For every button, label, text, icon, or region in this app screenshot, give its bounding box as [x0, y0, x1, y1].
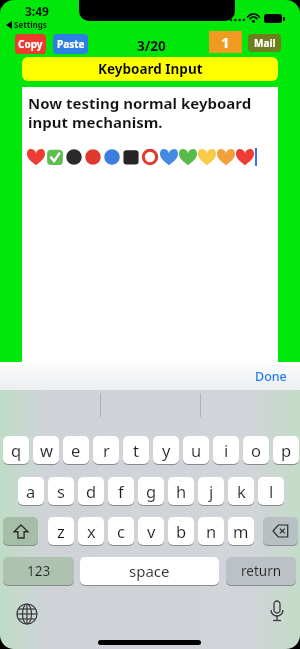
staticText: Keyboard Input [98, 60, 203, 78]
button[interactable]: z [48, 517, 74, 545]
button[interactable]: b [168, 517, 194, 545]
staticText: w [40, 439, 53, 461]
button[interactable]: e [63, 436, 89, 464]
button[interactable] [3, 517, 38, 545]
button[interactable]: 123 [3, 557, 74, 585]
button[interactable]: g [138, 477, 164, 505]
staticText: Settings [14, 19, 47, 30]
button[interactable]: t [123, 436, 149, 464]
staticText: u [191, 439, 202, 461]
staticText: m [233, 520, 249, 542]
button[interactable]: y [153, 436, 179, 464]
button[interactable]: v [138, 517, 164, 545]
staticText: b [176, 520, 187, 542]
button[interactable]: i [213, 436, 239, 464]
button[interactable]: 1 [209, 31, 242, 53]
button[interactable]: k [228, 477, 254, 505]
staticText: a [26, 480, 36, 502]
button[interactable]: q [3, 436, 29, 464]
staticText: y [162, 439, 171, 461]
button[interactable]: c [108, 517, 134, 545]
button[interactable]: m [228, 517, 254, 545]
staticText: e [71, 439, 81, 461]
button[interactable]: return [226, 557, 296, 585]
button[interactable]: Paste [53, 34, 88, 54]
staticText: j [209, 480, 214, 502]
staticText: 3/20 [137, 37, 166, 55]
button[interactable]: s [48, 477, 74, 505]
button[interactable] [269, 601, 285, 624]
staticText: Mail [254, 36, 276, 50]
button[interactable]: l [258, 477, 284, 505]
button[interactable]: p [273, 436, 299, 464]
staticText: r [103, 439, 110, 461]
button[interactable] [16, 603, 38, 625]
button[interactable]: w [33, 436, 59, 464]
button[interactable]: r [93, 436, 119, 464]
button[interactable]: Copy [15, 34, 46, 54]
staticText: k [237, 480, 246, 502]
staticText: z [57, 520, 65, 542]
staticText: i [224, 439, 229, 461]
staticText: 123 [27, 562, 51, 580]
staticText: Paste [57, 37, 85, 51]
button[interactable]: Settings [6, 19, 47, 30]
staticText: q [11, 439, 22, 461]
button[interactable]: space [80, 557, 219, 585]
staticText: g [146, 480, 157, 502]
staticText: t [133, 439, 139, 461]
staticText: Now testing normal keyboard input mechan… [28, 93, 252, 132]
staticText: o [251, 439, 261, 461]
staticText: x [87, 520, 96, 542]
button[interactable]: x [78, 517, 104, 545]
button[interactable]: d [78, 477, 104, 505]
button[interactable]: Mail [248, 34, 281, 52]
staticText: c [117, 520, 125, 542]
staticText: d [86, 480, 97, 502]
staticText: 3:49 [25, 3, 49, 19]
button[interactable]: Keyboard Input [22, 57, 278, 81]
button[interactable]: n [198, 517, 224, 545]
staticText: space [129, 561, 170, 581]
staticText: Copy [18, 37, 43, 51]
button[interactable]: o [243, 436, 269, 464]
staticText: h [176, 480, 187, 502]
button[interactable]: f [108, 477, 134, 505]
button[interactable]: Done [255, 368, 287, 385]
staticText: return [241, 562, 282, 580]
button[interactable]: a [18, 477, 44, 505]
button[interactable] [263, 517, 298, 545]
staticText: p [281, 439, 292, 461]
staticText: v [147, 520, 156, 542]
button[interactable]: j [198, 477, 224, 505]
staticText: s [57, 480, 65, 502]
staticText: n [206, 520, 217, 542]
staticText: 1 [221, 32, 230, 52]
staticText: l [269, 480, 274, 502]
staticText: f [118, 480, 124, 502]
button[interactable]: u [183, 436, 209, 464]
button[interactable]: h [168, 477, 194, 505]
